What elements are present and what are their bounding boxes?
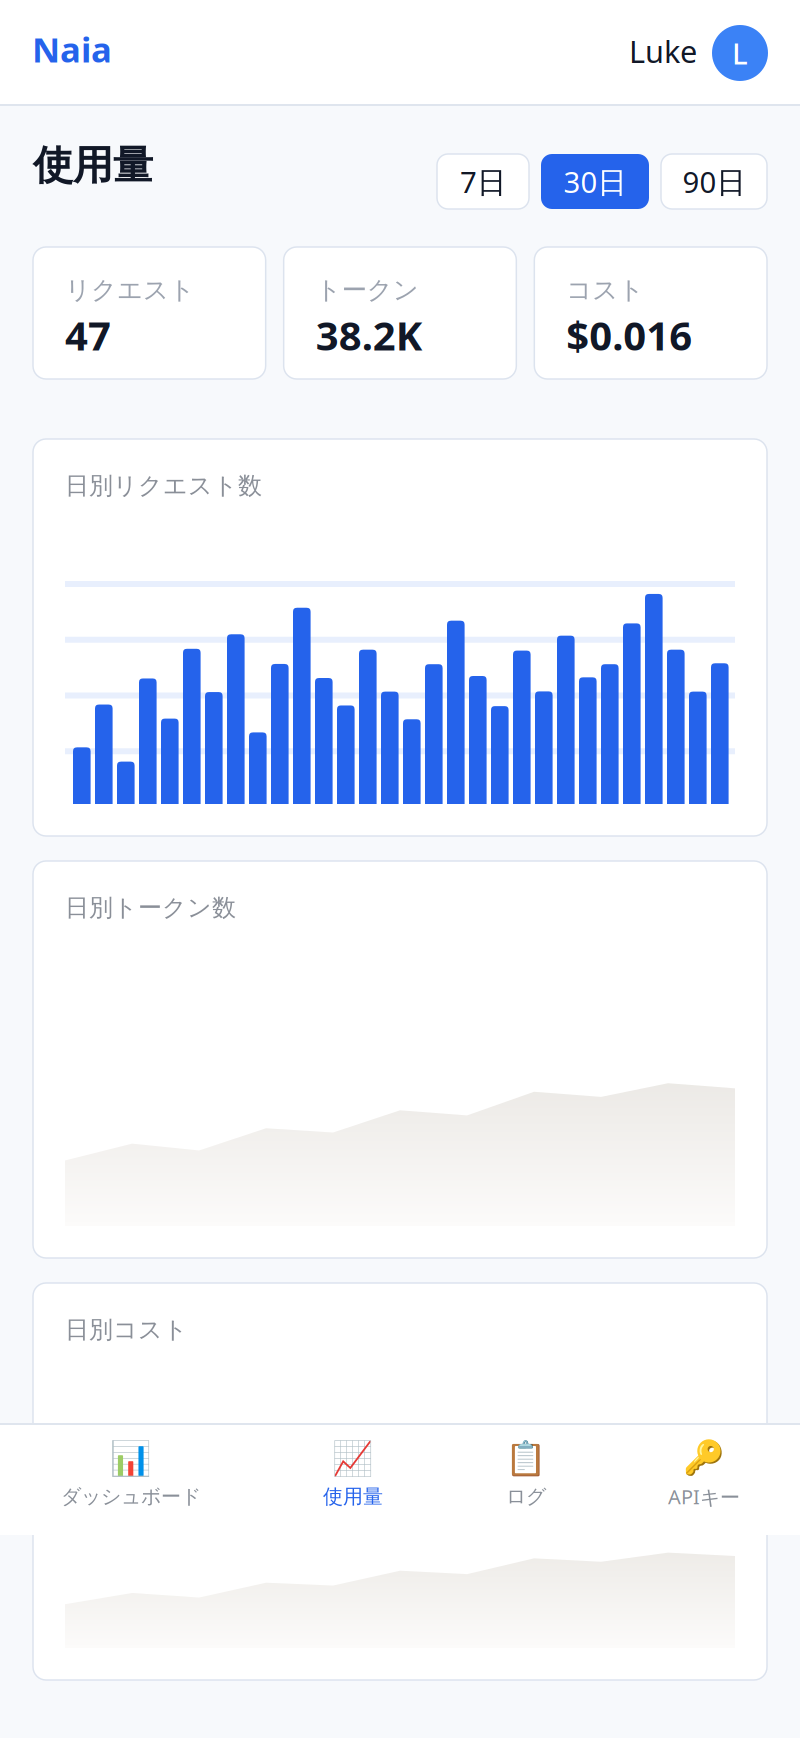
button[interactable]: 90日 xyxy=(661,154,767,209)
staticText: 📊 xyxy=(110,1439,152,1477)
staticText: APIキー xyxy=(668,1483,740,1510)
staticText: 30日 xyxy=(563,162,626,201)
button[interactable]: 7日 xyxy=(437,154,529,209)
button[interactable]: 📊 xyxy=(0,1423,262,1535)
staticText: 📈 xyxy=(332,1439,374,1477)
staticText: ログ xyxy=(506,1484,546,1509)
staticText: コスト xyxy=(566,274,644,305)
button[interactable]: Luke xyxy=(629,25,768,81)
button[interactable]: 30日 xyxy=(541,154,649,209)
staticText: ダッシュボード xyxy=(61,1484,201,1509)
staticText: L xyxy=(732,33,748,72)
button[interactable]: 📋 xyxy=(444,1423,608,1535)
staticText: Luke xyxy=(629,31,697,71)
staticText: 38.2K xyxy=(316,308,423,362)
staticText: リクエスト xyxy=(65,274,195,305)
staticText: 📋 xyxy=(505,1439,547,1477)
staticText: 🔑 xyxy=(683,1438,725,1476)
staticText: 日別コスト xyxy=(65,1315,188,1344)
staticText: 日別リクエスト数 xyxy=(65,471,262,500)
staticText: Naia xyxy=(32,26,112,72)
staticText: 47 xyxy=(65,308,111,362)
staticText: トークン xyxy=(316,274,419,305)
staticText: 7日 xyxy=(460,162,506,201)
button[interactable]: 🔑 xyxy=(608,1423,800,1535)
staticText: $0.016 xyxy=(566,308,692,362)
staticText: 使用量 xyxy=(33,141,153,190)
staticText: 使用量 xyxy=(323,1484,383,1509)
staticText: 90日 xyxy=(682,162,745,201)
button[interactable]: 📈 xyxy=(262,1423,444,1535)
staticText: 日別トークン数 xyxy=(65,893,236,922)
